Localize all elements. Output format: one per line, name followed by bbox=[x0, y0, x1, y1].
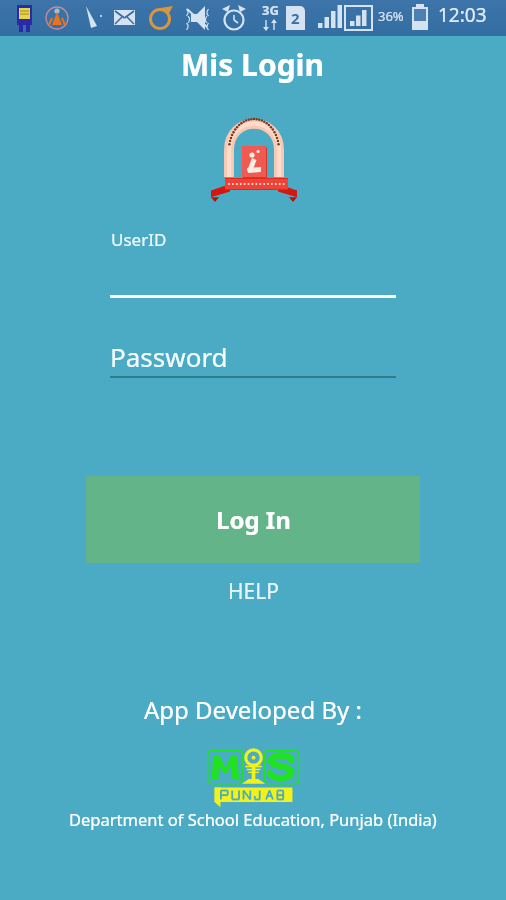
button[interactable]: UserID bbox=[110, 224, 396, 298]
staticText: App Developed By : bbox=[144, 693, 362, 725]
other: Department of School Education Punjab em… bbox=[208, 118, 300, 198]
staticText: Password bbox=[110, 339, 228, 374]
button[interactable]: Log In bbox=[86, 476, 420, 563]
staticText: Log In bbox=[216, 503, 291, 536]
button[interactable]: Password bbox=[110, 335, 396, 378]
staticText: 2 bbox=[291, 8, 300, 28]
staticText: 12:03 bbox=[438, 2, 487, 28]
staticText: 3G bbox=[262, 1, 279, 19]
staticText: Mis Login bbox=[181, 44, 325, 84]
staticText: 36% bbox=[378, 7, 404, 25]
staticText: HELP bbox=[228, 577, 279, 606]
button[interactable]: HELP bbox=[0, 575, 506, 607]
other: MIS Punjab logo bbox=[201, 744, 308, 808]
staticText: Department of School Education, Punjab (… bbox=[69, 808, 437, 830]
staticText: UserID bbox=[111, 228, 167, 251]
